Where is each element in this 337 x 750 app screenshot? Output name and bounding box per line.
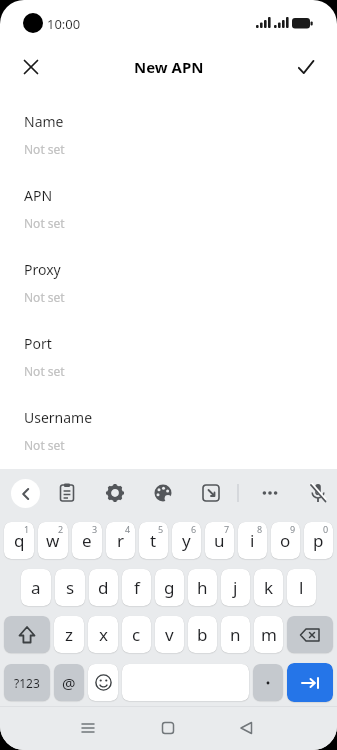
staticText: Port <box>24 334 52 353</box>
staticText: Not set <box>24 215 65 231</box>
staticText: APN <box>24 186 53 205</box>
staticText: r <box>117 529 125 552</box>
button[interactable]: t <box>139 522 168 559</box>
button[interactable]: z <box>54 616 84 653</box>
staticText: j <box>233 576 238 599</box>
button[interactable] <box>88 664 118 701</box>
staticText: ?123 <box>14 675 40 691</box>
staticText: 7 <box>224 523 230 535</box>
staticText: u <box>214 529 225 552</box>
staticText: q <box>14 529 25 552</box>
staticText: Proxy <box>24 260 61 279</box>
button[interactable]: o <box>271 522 300 559</box>
button[interactable]: Name <box>0 94 337 168</box>
button[interactable] <box>225 706 337 750</box>
staticText: Not set <box>24 437 65 453</box>
staticText: New APN <box>134 57 204 77</box>
button[interactable]: v <box>155 616 184 653</box>
staticText: p <box>313 529 324 552</box>
staticText: m <box>261 623 277 646</box>
staticText: i <box>250 529 255 552</box>
button[interactable]: b <box>188 616 217 653</box>
staticText: v <box>165 623 174 646</box>
button[interactable] <box>253 664 283 701</box>
button[interactable] <box>287 616 333 653</box>
button[interactable] <box>53 479 81 507</box>
button[interactable]: g <box>155 569 184 606</box>
button[interactable]: l <box>287 569 316 606</box>
staticText: a <box>31 576 41 599</box>
button[interactable]: @ <box>54 664 84 701</box>
staticText: e <box>82 529 92 552</box>
staticText: y <box>182 529 191 552</box>
staticText: t <box>150 529 157 552</box>
staticText: 2 <box>58 523 64 535</box>
button[interactable]: Proxy <box>0 242 337 316</box>
button[interactable]: m <box>254 616 283 653</box>
button[interactable]: j <box>221 569 250 606</box>
staticText: Not set <box>24 363 65 379</box>
staticText: h <box>197 576 208 599</box>
button[interactable]: s <box>55 569 85 606</box>
button[interactable]: h <box>188 569 217 606</box>
staticText: 8 <box>257 523 263 535</box>
button[interactable]: ?123 <box>4 664 50 701</box>
button[interactable]: e <box>72 522 102 559</box>
staticText: 4 <box>125 523 131 535</box>
button[interactable]: f <box>122 569 151 606</box>
staticText: z <box>65 623 73 646</box>
staticText: x <box>99 623 108 646</box>
staticText: Username <box>24 408 93 427</box>
button[interactable] <box>113 706 225 750</box>
button[interactable]: r <box>106 522 135 559</box>
button[interactable]: n <box>221 616 250 653</box>
staticText: 5 <box>158 523 164 535</box>
button[interactable]: Port <box>0 316 337 390</box>
button[interactable] <box>197 479 225 507</box>
button[interactable]: u <box>205 522 234 559</box>
button[interactable]: d <box>89 569 118 606</box>
staticText: Not set <box>24 141 65 157</box>
staticText: n <box>230 623 241 646</box>
staticText: g <box>164 576 175 599</box>
staticText: 9 <box>290 523 296 535</box>
button[interactable]: p <box>304 522 333 559</box>
staticText: 0 <box>323 523 329 535</box>
button[interactable]: q <box>4 522 34 559</box>
button[interactable] <box>256 479 284 507</box>
staticText: o <box>280 529 291 552</box>
staticText: Name <box>24 112 64 131</box>
staticText: @ <box>62 673 76 693</box>
button[interactable] <box>287 663 333 702</box>
button[interactable]: APN <box>0 168 337 242</box>
button[interactable] <box>122 664 249 701</box>
button[interactable] <box>101 479 129 507</box>
button[interactable]: a <box>21 569 51 606</box>
staticText: 1 <box>24 523 30 535</box>
staticText: l <box>299 576 304 599</box>
button[interactable] <box>11 479 40 508</box>
button[interactable]: k <box>254 569 283 606</box>
button[interactable] <box>149 479 177 507</box>
staticText: Not set <box>24 289 65 305</box>
button[interactable]: y <box>172 522 201 559</box>
staticText: c <box>132 623 141 646</box>
button[interactable] <box>17 53 45 81</box>
staticText: k <box>264 576 274 599</box>
staticText: 6 <box>191 523 197 535</box>
staticText: f <box>134 576 140 599</box>
button[interactable]: x <box>88 616 118 653</box>
staticText: d <box>98 576 109 599</box>
staticText: b <box>197 623 208 646</box>
staticText: w <box>46 529 60 552</box>
button[interactable]: i <box>238 522 267 559</box>
button[interactable] <box>4 616 50 653</box>
button[interactable]: w <box>38 522 68 559</box>
staticText: s <box>66 576 75 599</box>
button[interactable] <box>304 479 332 507</box>
button[interactable]: c <box>122 616 151 653</box>
button[interactable] <box>0 706 113 750</box>
button[interactable] <box>292 53 320 81</box>
staticText: 3 <box>92 523 98 535</box>
button[interactable]: Username <box>0 390 337 464</box>
